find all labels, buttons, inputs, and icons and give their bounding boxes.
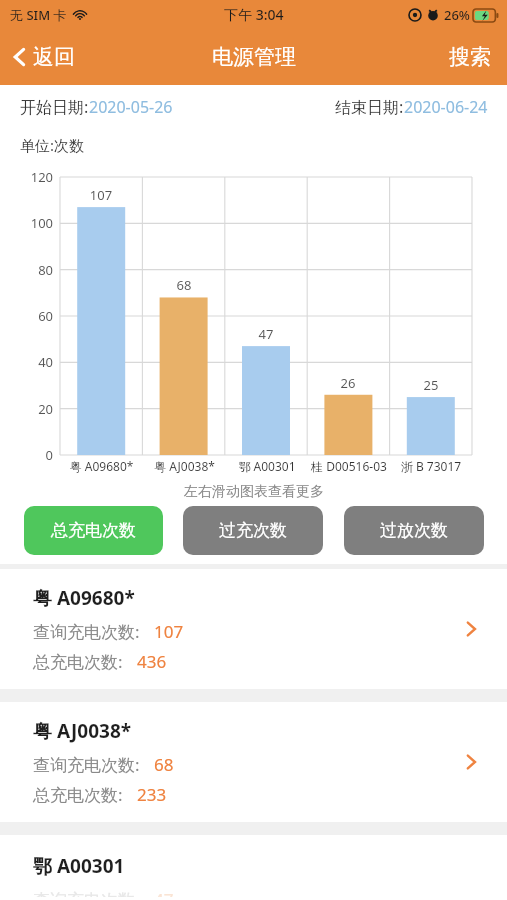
staticText: 粤 A09680* bbox=[60, 458, 143, 474]
staticText: 搜索 bbox=[449, 44, 491, 70]
button[interactable]: 鄂 A00301 bbox=[0, 835, 507, 897]
staticText: 25 bbox=[406, 376, 456, 394]
staticText: 查询充电次数: bbox=[33, 620, 140, 643]
staticText: 无 SIM 卡 bbox=[10, 6, 67, 24]
button[interactable]: 结束日期: bbox=[335, 96, 507, 118]
button[interactable]: 粤 AJ0038* bbox=[0, 702, 507, 822]
staticText: 68 bbox=[154, 753, 174, 776]
staticText: 20 bbox=[8, 400, 53, 418]
staticText: 总充电次数 bbox=[51, 520, 136, 541]
staticText: 107 bbox=[154, 620, 184, 643]
staticText: 总充电次数: bbox=[33, 783, 123, 806]
staticText: 电源管理 bbox=[212, 44, 296, 70]
staticText: 总充电次数: bbox=[33, 650, 123, 673]
staticText: 鄂 A00301 bbox=[226, 458, 308, 474]
button[interactable]: 搜索 bbox=[435, 36, 507, 78]
staticText: 107 bbox=[76, 186, 126, 204]
staticText: 粤 AJ0038* bbox=[143, 458, 226, 474]
staticText: 左右滑动图表查看更多 bbox=[184, 483, 324, 501]
button[interactable]: 过充次数 bbox=[183, 506, 323, 555]
button[interactable]: 返回 bbox=[0, 36, 89, 78]
staticText: 47 bbox=[154, 888, 174, 897]
button[interactable]: 过放次数 bbox=[344, 506, 484, 555]
staticText: 120 bbox=[8, 168, 53, 186]
staticText: 80 bbox=[8, 261, 53, 279]
staticText: 开始日期: bbox=[20, 96, 89, 118]
staticText: 查询充电次数: bbox=[33, 753, 140, 776]
other: 查看详情 bbox=[457, 615, 485, 643]
staticText: 粤 AJ0038* bbox=[33, 718, 132, 744]
staticText: 浙 B 73017 bbox=[390, 458, 472, 474]
staticText: 26% bbox=[444, 6, 470, 24]
staticText: 过充次数 bbox=[219, 520, 287, 541]
button[interactable]: 粤 A09680* bbox=[0, 569, 507, 689]
staticText: 下午 3:04 bbox=[224, 5, 284, 24]
staticText: 桂 D00516-03 bbox=[308, 458, 390, 474]
staticText: 过放次数 bbox=[380, 520, 448, 541]
button[interactable]: 总充电次数 bbox=[24, 506, 163, 555]
staticText: 0 bbox=[8, 446, 53, 464]
staticText: 233 bbox=[137, 783, 167, 806]
staticText: 26 bbox=[323, 374, 373, 392]
staticText: 100 bbox=[8, 214, 53, 232]
staticText: 2020-06-24 bbox=[404, 96, 488, 118]
staticText: 单位:次数 bbox=[20, 135, 85, 155]
staticText: 68 bbox=[159, 276, 209, 294]
staticText: 粤 A09680* bbox=[33, 585, 135, 611]
staticText: 2020-05-26 bbox=[89, 96, 173, 118]
staticText: 结束日期: bbox=[335, 96, 404, 118]
staticText: 60 bbox=[8, 307, 53, 325]
button[interactable]: 开始日期: bbox=[0, 96, 173, 118]
staticText: 47 bbox=[241, 325, 291, 343]
staticText: 436 bbox=[137, 650, 167, 673]
staticText: 返回 bbox=[33, 44, 75, 70]
other: 查看详情 bbox=[457, 748, 485, 776]
staticText: 40 bbox=[8, 353, 53, 371]
staticText: 鄂 A00301 bbox=[33, 853, 125, 879]
staticText: 查询充电次数: bbox=[33, 888, 140, 897]
